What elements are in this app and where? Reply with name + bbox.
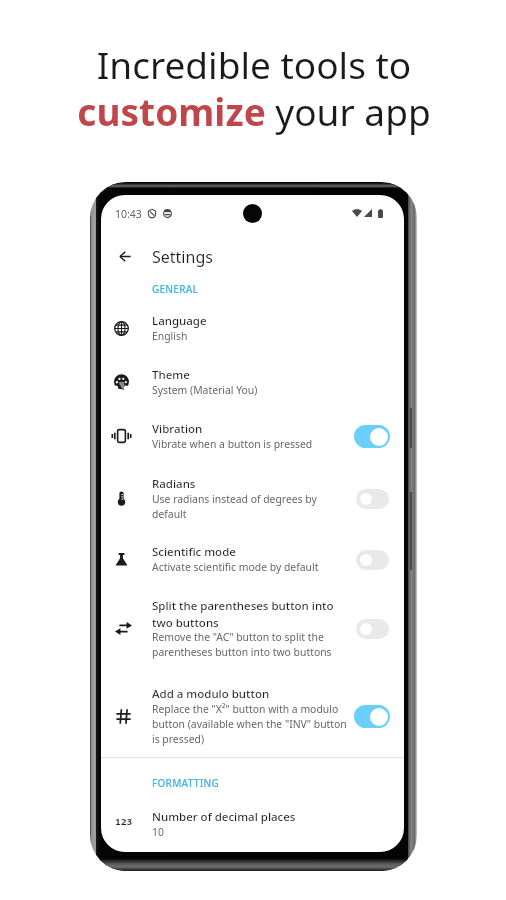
staticText: Language — [152, 313, 207, 329]
staticText: Radians — [152, 476, 196, 492]
staticText: 10:43 — [115, 207, 142, 221]
button[interactable]: Toggle — [354, 487, 390, 510]
staticText: Remove the "AC" button to split the pare… — [152, 630, 344, 659]
staticText: Add a modulo button — [152, 686, 270, 702]
button[interactable]: Back — [107, 244, 143, 268]
staticText: Activate scientific mode by default — [152, 560, 319, 574]
button[interactable]: Theme — [101, 367, 404, 397]
button[interactable]: FORMATTING — [152, 776, 219, 790]
staticText: Scientific mode — [152, 544, 236, 560]
staticText: Split the parentheses button into two bu… — [152, 598, 344, 630]
staticText: 10 — [152, 825, 164, 839]
button[interactable]: 123 — [101, 809, 404, 839]
button[interactable]: Toggle — [354, 425, 390, 448]
staticText: FORMATTING — [152, 776, 219, 790]
staticText: Settings — [152, 246, 213, 268]
staticText: 123 — [115, 815, 133, 828]
staticText: Vibrate when a button is pressed — [152, 437, 313, 451]
button[interactable]: Scientific mode — [101, 544, 404, 574]
staticText: English — [152, 329, 188, 343]
button[interactable]: Split the parentheses button into two bu… — [101, 598, 404, 659]
staticText: System (Material You) — [152, 383, 258, 397]
staticText: Number of decimal places — [152, 809, 296, 825]
staticText: Theme — [152, 367, 190, 383]
button[interactable]: Toggle — [354, 617, 390, 640]
button[interactable]: Add a modulo button — [101, 686, 404, 746]
staticText: Replace the "X²" button with a modulo bu… — [152, 702, 348, 746]
staticText: GENERAL — [152, 282, 199, 296]
button[interactable]: Toggle — [354, 548, 390, 571]
staticText: Vibration — [152, 421, 203, 437]
button[interactable]: Vibration — [101, 421, 404, 451]
button[interactable]: Toggle — [354, 705, 390, 728]
staticText: Use radians instead of degrees by defaul… — [152, 492, 344, 521]
button[interactable]: GENERAL — [152, 282, 199, 296]
button[interactable]: Radians — [101, 476, 404, 521]
staticText: Incredible tools to customize your app — [1, 39, 506, 137]
button[interactable]: Language — [101, 313, 404, 343]
